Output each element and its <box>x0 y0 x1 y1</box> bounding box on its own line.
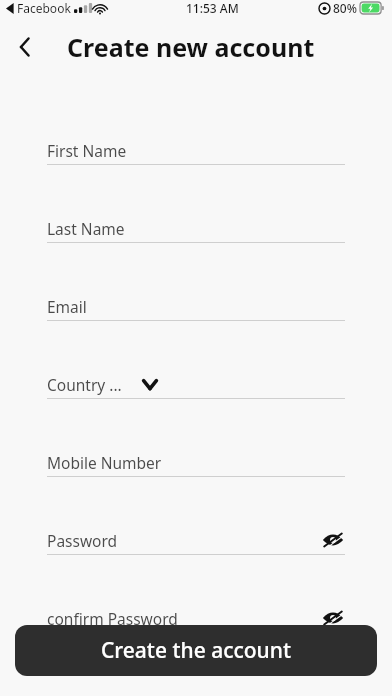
button[interactable]: Toggle password visibility <box>321 530 345 550</box>
staticText: Password <box>47 530 118 551</box>
button[interactable]: confirm Password <box>0 604 392 646</box>
other: Select country <box>140 378 160 390</box>
button[interactable]: Last Name <box>0 214 392 256</box>
staticText: confirm Password <box>47 608 178 629</box>
staticText: Last Name <box>47 218 125 239</box>
staticText: Country ... <box>47 374 122 395</box>
staticText: 11:53 AM <box>186 0 239 16</box>
staticText: First Name <box>47 140 127 161</box>
staticText: Email <box>47 296 87 317</box>
button[interactable]: Toggle password visibility <box>321 608 345 628</box>
button[interactable]: Password <box>0 526 392 568</box>
button[interactable]: Back <box>6 26 42 68</box>
button[interactable]: Mobile Number <box>0 448 392 490</box>
button[interactable]: First Name <box>0 136 392 178</box>
button[interactable]: Email <box>0 292 392 334</box>
staticText: Facebook <box>17 0 71 16</box>
staticText: Create new account <box>67 30 315 64</box>
staticText: 80% <box>333 0 357 16</box>
staticText: Mobile Number <box>47 452 162 473</box>
button[interactable]: Country ... <box>0 370 392 412</box>
button[interactable]: Create the account <box>15 625 377 676</box>
staticText: Create the account <box>101 636 291 665</box>
